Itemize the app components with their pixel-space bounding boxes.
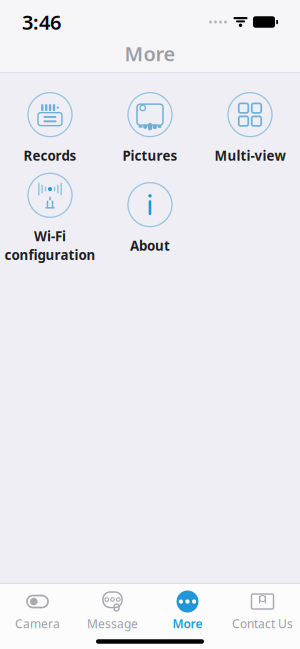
staticText: Multi-view <box>214 147 285 164</box>
staticText: Records <box>23 147 76 164</box>
button[interactable]: Pictures <box>104 85 196 171</box>
staticText: About <box>130 237 170 254</box>
staticText: 3:46 <box>22 9 61 35</box>
button[interactable]: Multi-view <box>204 85 296 171</box>
button[interactable]: Wi-Fi <box>4 175 96 261</box>
button[interactable]: More <box>150 589 225 633</box>
staticText: Contact Us <box>232 615 293 631</box>
staticText: Pictures <box>122 147 177 164</box>
staticText: More <box>124 40 175 67</box>
button[interactable]: Contact Us <box>225 589 300 633</box>
button[interactable]: Camera <box>0 589 75 633</box>
staticText: Wi-Fi <box>34 227 66 245</box>
button[interactable]: Message <box>75 589 150 633</box>
staticText: configuration <box>4 246 95 264</box>
button[interactable]: Records <box>4 85 96 171</box>
staticText: More <box>172 615 202 631</box>
staticText: Message <box>87 615 138 631</box>
button[interactable]: About <box>104 175 196 261</box>
staticText: Camera <box>15 615 60 631</box>
